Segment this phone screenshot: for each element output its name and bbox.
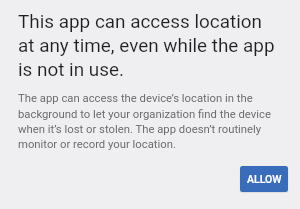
staticText: The app can access the device’s location…	[18, 92, 271, 151]
staticText: This app can access location at any time…	[18, 10, 275, 81]
button[interactable]: ALLOW	[240, 166, 288, 192]
staticText: ALLOW	[247, 173, 282, 185]
